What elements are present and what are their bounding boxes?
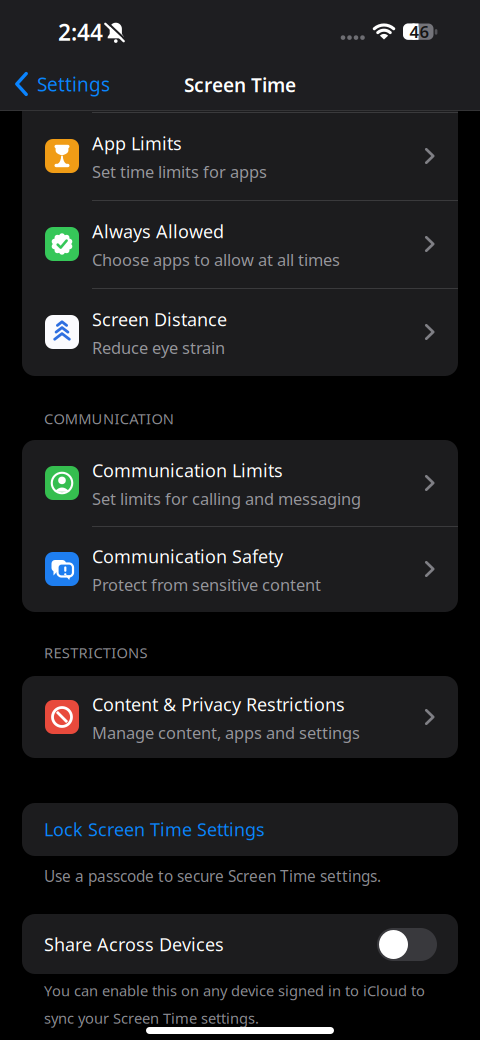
staticText: Protect from sensitive content <box>92 573 321 596</box>
staticText: Choose apps to allow at all times <box>92 248 340 271</box>
staticText: Manage content, apps and settings <box>92 721 360 744</box>
staticText: RESTRICTIONS <box>44 642 147 662</box>
staticText: sync your Screen Time settings. <box>44 1008 259 1028</box>
staticText: Screen Time <box>184 72 296 98</box>
staticText: Content & Privacy Restrictions <box>92 692 345 716</box>
staticText: You can enable this on any device signed… <box>44 980 425 1000</box>
staticText: Set limits for calling and messaging <box>92 487 361 510</box>
button[interactable]: Screen Distance <box>22 288 458 376</box>
staticText: Reduce eye strain <box>92 336 225 359</box>
button[interactable]: App Limits <box>22 112 458 200</box>
staticText: 2:44 <box>58 17 103 47</box>
button[interactable]: Communication Safety <box>22 526 458 612</box>
button[interactable]: Back <box>15 71 110 97</box>
button[interactable]: Communication Limits <box>22 440 458 526</box>
staticText: Share Across Devices <box>44 932 224 956</box>
button[interactable]: Content & Privacy Restrictions <box>22 676 458 758</box>
staticText: Settings <box>37 71 110 97</box>
button[interactable]: Always Allowed <box>22 200 458 288</box>
staticText: Always Allowed <box>92 219 224 243</box>
staticText: Use a passcode to secure Screen Time set… <box>44 865 381 886</box>
staticText: Lock Screen Time Settings <box>44 817 265 841</box>
staticText: App Limits <box>92 131 182 155</box>
staticText: Set time limits for apps <box>92 160 267 183</box>
staticText: 46 <box>409 20 429 43</box>
staticText: Communication Safety <box>92 544 283 568</box>
button[interactable]: Share Across Devices <box>377 928 437 961</box>
staticText: COMMUNICATION <box>44 408 174 428</box>
staticText: Communication Limits <box>92 458 283 482</box>
staticText: Screen Distance <box>92 307 227 331</box>
button[interactable]: Lock Screen Time Settings <box>22 803 458 856</box>
